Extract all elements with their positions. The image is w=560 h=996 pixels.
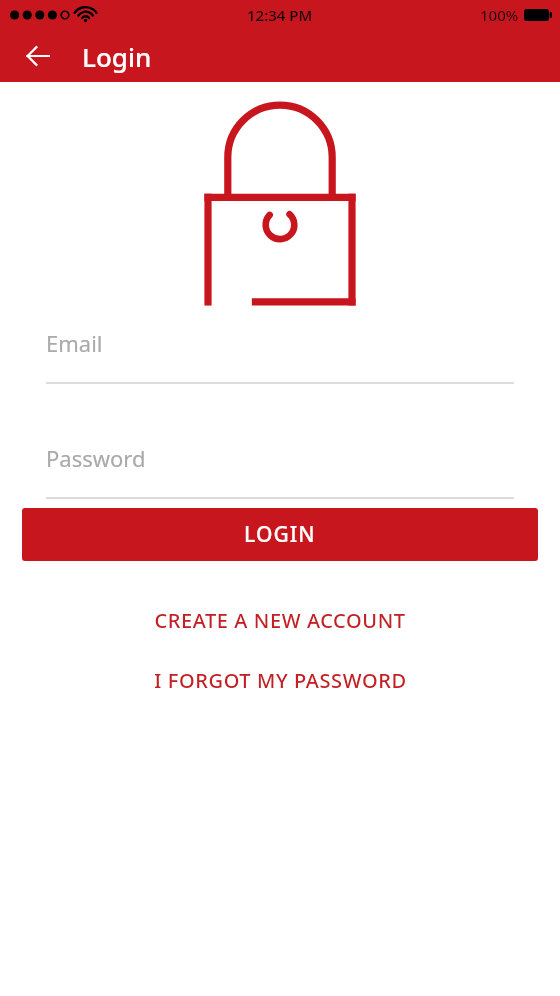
staticText: Login	[82, 39, 152, 74]
staticText: Password	[46, 443, 146, 473]
button[interactable]: Back	[14, 32, 62, 80]
staticText: 12:34 PM	[247, 5, 313, 25]
staticText: 100%	[480, 5, 519, 25]
button[interactable]: Email	[46, 314, 514, 384]
staticText: Email	[46, 328, 103, 358]
button[interactable]: LOGIN	[22, 508, 538, 561]
staticText: CREATE A NEW ACCOUNT	[154, 607, 406, 634]
staticText: LOGIN	[244, 520, 316, 549]
button[interactable]: I FORGOT MY PASSWORD	[0, 660, 560, 700]
button[interactable]: CREATE A NEW ACCOUNT	[0, 600, 560, 640]
button[interactable]: Password	[46, 384, 514, 499]
staticText: I FORGOT MY PASSWORD	[154, 667, 407, 694]
